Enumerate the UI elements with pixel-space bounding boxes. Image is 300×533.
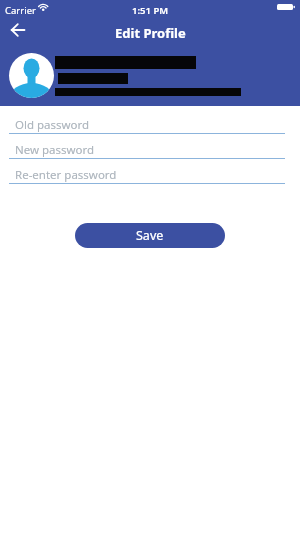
staticText: 1:51 PM [132, 4, 169, 17]
button[interactable]: Re-enter password [9, 166, 285, 184]
button[interactable]: Old password [9, 116, 285, 134]
staticText: Save [136, 227, 164, 244]
button[interactable]: New password [9, 141, 285, 159]
staticText: Carrier [5, 4, 36, 17]
staticText: Edit Profile [115, 24, 186, 42]
staticText: Old password [15, 117, 90, 133]
button[interactable] [6, 22, 32, 38]
button[interactable]: Save [75, 223, 225, 248]
staticText: Re-enter password [15, 167, 117, 183]
staticText: New password [15, 142, 95, 158]
